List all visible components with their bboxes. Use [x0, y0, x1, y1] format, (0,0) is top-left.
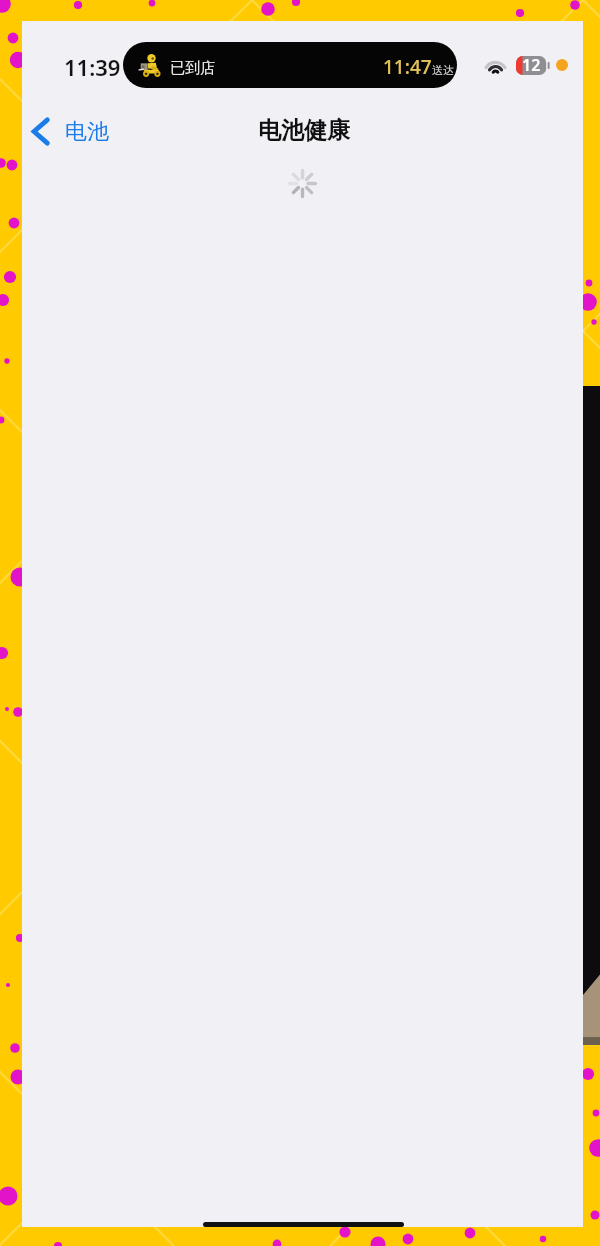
staticText: 11:39: [64, 52, 121, 82]
staticText: 11:47: [383, 54, 432, 80]
button[interactable]: Battery 12 percent: [516, 54, 549, 76]
button[interactable]: Back to 电池: [25, 111, 115, 151]
button[interactable]: Live activity: 已到店: [123, 42, 457, 88]
button[interactable]: Wi-Fi: [483, 55, 508, 75]
other: Location in use: [556, 59, 568, 71]
staticText: 电池: [65, 118, 109, 146]
staticText: 电池健康: [258, 116, 350, 145]
staticText: 送达: [432, 63, 454, 77]
staticText: 12: [522, 54, 541, 76]
button[interactable]: Home indicator: [203, 1222, 404, 1227]
staticText: 已到店: [170, 59, 215, 78]
